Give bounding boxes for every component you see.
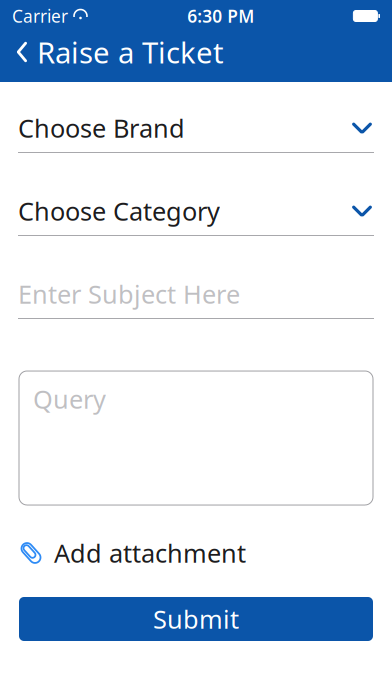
staticText: Choose Category (18, 194, 220, 228)
staticText: Enter Subject Here (18, 277, 240, 311)
staticText: Carrier (12, 4, 68, 27)
staticText: Raise a Ticket (37, 32, 224, 71)
button[interactable]: Choose Brand (0, 111, 392, 153)
button[interactable]: Enter Subject Here (0, 277, 392, 319)
staticText: Submit (153, 602, 239, 636)
button[interactable]: Choose Category (0, 194, 392, 236)
staticText: Add attachment (54, 536, 246, 570)
staticText: Choose Brand (18, 111, 185, 145)
button[interactable]: Submit (19, 597, 373, 641)
button[interactable]: Raise a Ticket (0, 30, 238, 74)
button[interactable]: Add attachment (18, 536, 246, 570)
staticText: 6:30 PM (187, 4, 254, 27)
staticText: Query (33, 382, 106, 416)
button[interactable]: Query (19, 371, 373, 505)
